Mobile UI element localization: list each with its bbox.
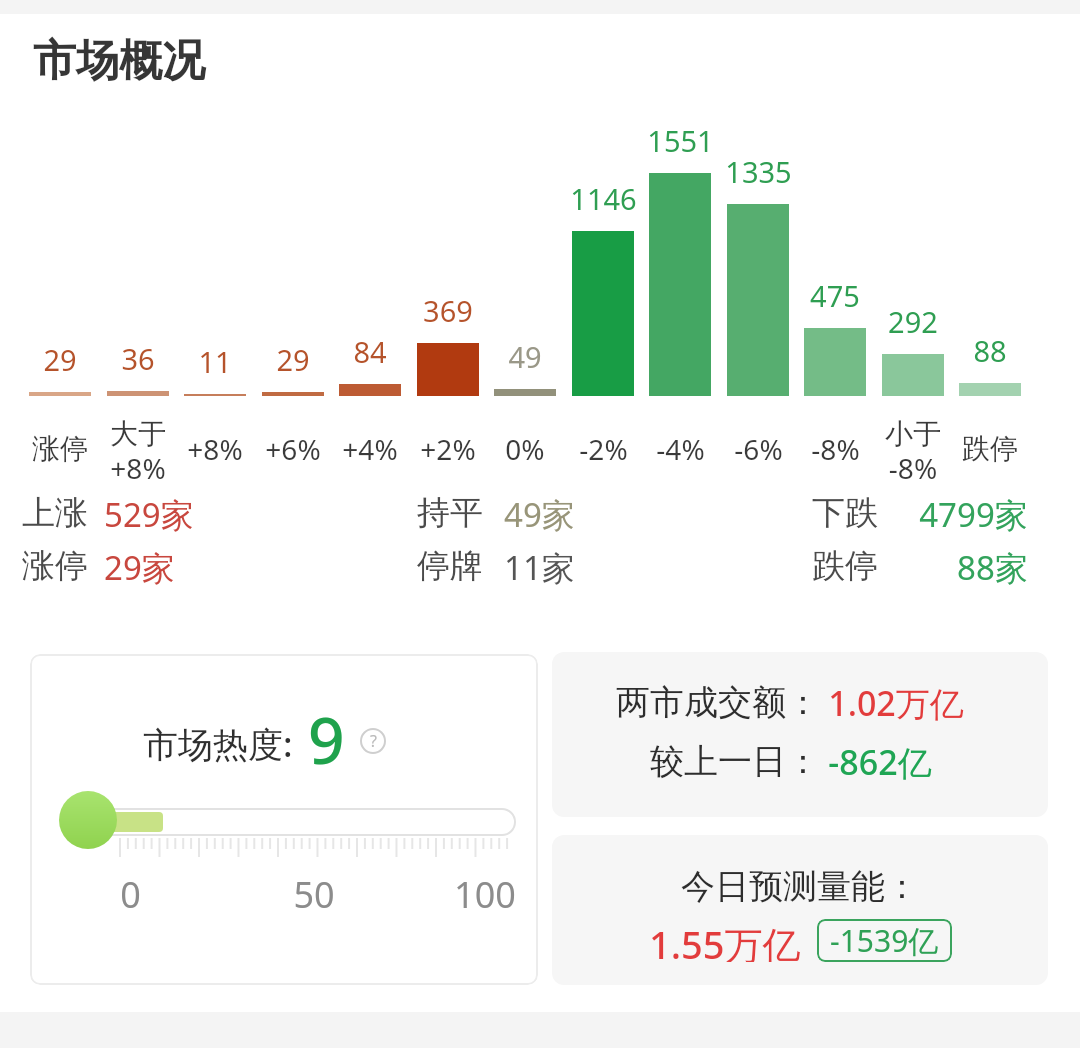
staticText: +6% xyxy=(265,430,321,466)
staticText: -4% xyxy=(656,430,705,466)
staticText: +4% xyxy=(342,430,398,466)
staticText: 1146 xyxy=(570,179,637,215)
staticText: 84 xyxy=(353,332,387,368)
staticText: 29 xyxy=(276,340,310,376)
staticText: 1551 xyxy=(647,121,714,157)
staticText: 小于 -8% xyxy=(885,416,941,486)
staticText: +2% xyxy=(420,430,476,466)
staticText: 9 xyxy=(308,696,345,783)
button[interactable]: 两市成交额： xyxy=(552,652,1048,817)
staticText: 0 xyxy=(120,870,141,914)
staticText: 较上一日： xyxy=(650,740,820,783)
staticText: -8% xyxy=(811,430,860,466)
staticText: 今日预测量能： xyxy=(681,865,919,908)
staticText: 0% xyxy=(505,430,545,466)
staticText: -2% xyxy=(579,430,628,466)
staticText: 大于 +8% xyxy=(110,416,166,486)
staticText: -862亿 xyxy=(828,739,932,783)
staticText: 100 xyxy=(454,870,516,914)
staticText: 两市成交额： xyxy=(616,681,820,724)
staticText: 88家 xyxy=(957,545,1028,585)
staticText: 29 xyxy=(43,340,77,376)
staticText: 29家 xyxy=(104,545,175,590)
button[interactable]: 市场热度: xyxy=(30,654,538,985)
staticText: 停牌 xyxy=(417,545,483,587)
staticText: 1.55万亿 xyxy=(649,918,801,962)
staticText: 11家 xyxy=(504,545,575,590)
staticText: 36 xyxy=(121,339,155,375)
staticText: 1335 xyxy=(725,152,792,188)
staticText: 市场概况 xyxy=(33,34,205,88)
staticText: 369 xyxy=(423,291,473,327)
staticText: -1539亿 xyxy=(830,920,939,961)
staticText: 50 xyxy=(293,870,335,914)
staticText: 529家 xyxy=(104,492,194,537)
staticText: 49家 xyxy=(504,492,575,537)
staticText: 跌停 xyxy=(962,431,1018,466)
staticText: 4799家 xyxy=(919,492,1028,532)
staticText: 市场热度: xyxy=(143,720,293,768)
staticText: 持平 xyxy=(417,492,483,534)
staticText: 涨停 xyxy=(22,545,88,587)
staticText: 下跌 xyxy=(812,492,878,534)
staticText: 跌停 xyxy=(812,545,878,587)
staticText: 475 xyxy=(810,276,860,312)
staticText: +8% xyxy=(187,430,243,466)
staticText: -6% xyxy=(734,430,783,466)
staticText: 292 xyxy=(888,302,938,338)
button[interactable]: 今日预测量能： xyxy=(552,835,1048,985)
staticText: ? xyxy=(370,730,377,752)
staticText: 11 xyxy=(198,342,232,378)
staticText: 上涨 xyxy=(22,492,88,534)
staticText: 49 xyxy=(508,337,542,373)
staticText: 涨停 xyxy=(32,431,88,466)
staticText: 1.02万亿 xyxy=(828,680,964,724)
staticText: 88 xyxy=(973,331,1007,367)
